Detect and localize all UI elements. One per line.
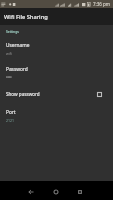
button[interactable]: Show password xyxy=(0,89,113,99)
button[interactable]: Home xyxy=(49,185,63,198)
button[interactable]: Password xyxy=(0,64,113,80)
staticText: 2121 xyxy=(6,118,15,123)
staticText: Settings xyxy=(6,29,19,34)
staticText: Show password xyxy=(6,91,40,97)
staticText: 7:36 pm xyxy=(93,1,111,7)
button[interactable]: Back xyxy=(24,185,38,198)
button[interactable]: Port xyxy=(0,107,113,125)
staticText: wifi xyxy=(6,51,12,56)
staticText: Username xyxy=(6,42,30,49)
staticText: Wifi File Sharing xyxy=(4,13,48,21)
button[interactable]: Recent apps xyxy=(73,185,87,198)
staticText: Port xyxy=(6,109,16,116)
button[interactable]: Username xyxy=(0,40,113,58)
staticText: Password xyxy=(6,66,28,73)
